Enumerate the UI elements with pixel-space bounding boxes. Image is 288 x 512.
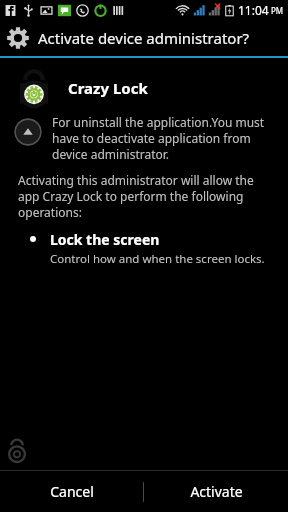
staticText: Crazy Lock [68, 78, 148, 98]
button[interactable]: Collapse [14, 118, 42, 146]
staticText: Activate device administrator? [38, 28, 250, 48]
staticText: 11:04 [238, 2, 269, 18]
staticText: PM [271, 5, 284, 16]
staticText: Cancel [50, 482, 94, 501]
button[interactable]: Activate [144, 471, 288, 512]
button[interactable]: Cancel [0, 471, 143, 512]
staticText: Activating this administrator will allow… [18, 172, 274, 220]
staticText: For uninstall the application.You must h… [52, 114, 276, 162]
staticText: Control how and when the screen locks. [50, 251, 265, 267]
staticText: Lock the screen [50, 230, 160, 249]
staticText: Activate [190, 482, 243, 501]
